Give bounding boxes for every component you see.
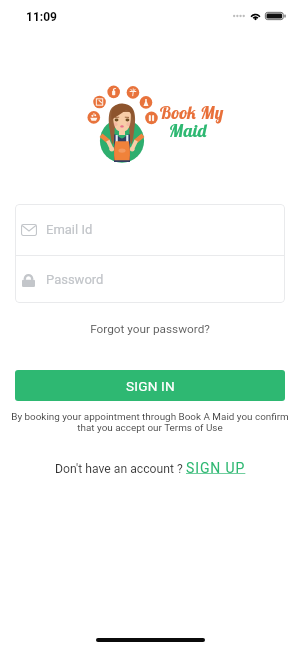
button[interactable]: Forgot your password?	[0, 322, 300, 336]
staticText: 11:09	[26, 10, 57, 24]
other: Battery	[265, 12, 286, 20]
staticText: Book My	[159, 101, 224, 124]
button[interactable]: SIGN UP	[186, 460, 246, 476]
staticText: SIGN IN	[126, 378, 175, 394]
staticText: Email Id	[46, 222, 93, 237]
staticText: SIGN UP	[186, 460, 246, 476]
button[interactable]: Email Id	[15, 204, 285, 255]
other: Wi-Fi	[250, 12, 261, 20]
staticText: Maid	[169, 119, 208, 142]
button[interactable]: SIGN IN	[15, 370, 285, 401]
other: Signal	[233, 14, 244, 18]
staticText: Password	[46, 272, 104, 287]
staticText: By booking your appointment through Book…	[0, 411, 300, 433]
staticText: Don't have an account ?	[55, 462, 186, 476]
button[interactable]: Password	[15, 256, 285, 303]
